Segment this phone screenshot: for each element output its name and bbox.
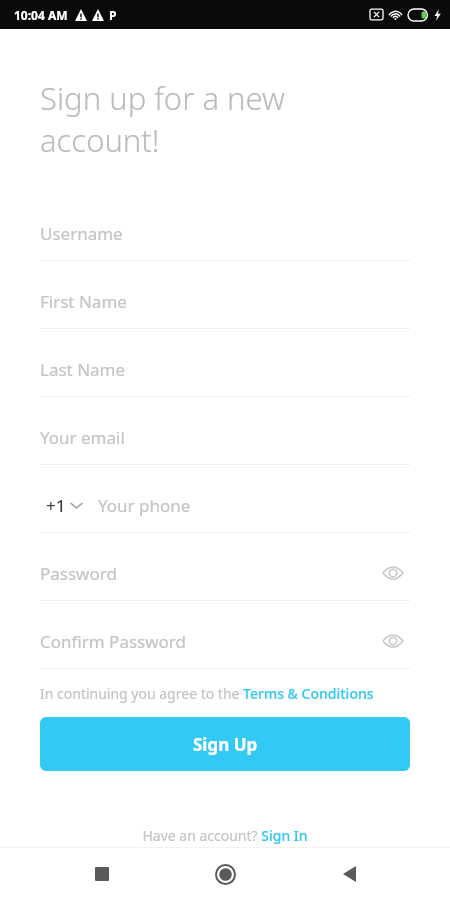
button[interactable]: Sign Up [40,717,410,771]
staticText: Have an account? Sign In [142,826,308,845]
button[interactable]: +1 [46,494,82,517]
staticText: Sign up for a new account! [40,77,410,161]
button[interactable]: Password [40,546,410,600]
button[interactable]: Have an account? Sign In [40,826,410,845]
staticText: Confirm Password [40,630,376,653]
staticText: Username [40,222,410,245]
staticText: Your phone [98,494,410,517]
button[interactable]: In continuing you agree to the Terms & C… [40,684,410,703]
button[interactable]: +1 [40,478,410,532]
button[interactable]: Show password [376,624,410,658]
staticText: 10:04 AM [14,7,68,23]
button[interactable]: Your email [40,410,410,464]
staticText: Sign Up [193,733,258,756]
staticText: Last Name [40,358,410,381]
staticText: Your email [40,426,410,449]
button[interactable]: First Name [40,274,410,328]
button[interactable]: Username [40,206,410,260]
button[interactable]: Last Name [40,342,410,396]
staticText: Password [40,562,376,585]
button[interactable]: Show password [376,556,410,590]
button[interactable]: Recent apps [80,852,124,896]
staticText: P [109,7,117,23]
button[interactable]: Back [327,852,371,896]
staticText: +1 [46,494,66,517]
button[interactable]: Home [203,852,247,896]
button[interactable]: Confirm Password [40,614,410,668]
staticText: First Name [40,290,410,313]
